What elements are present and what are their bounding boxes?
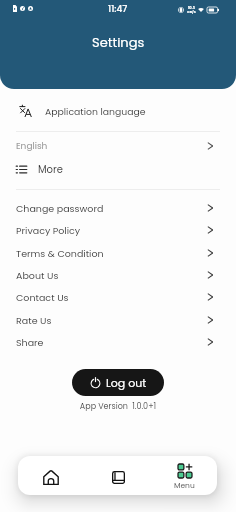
staticText: More [38,162,63,176]
button[interactable]: Books [85,456,151,495]
button[interactable]: Change password [0,197,236,219]
staticText: Rate Us [16,314,52,327]
button[interactable]: Home [18,456,84,495]
staticText: Contact Us [16,291,69,304]
staticText: About Us [16,269,59,282]
button[interactable]: Rate Us [0,309,236,331]
button[interactable]: Terms & Condition [0,242,236,264]
staticText: Menu [174,480,195,490]
button[interactable]: Menu [151,456,217,495]
staticText: Log out [106,375,147,390]
staticText: Settings [92,33,145,51]
staticText: 10.5 KB/s [187,5,196,14]
staticText: Share [16,336,44,349]
button[interactable]: English [0,137,236,155]
staticText: English [16,140,48,153]
staticText: Terms & Condition [16,247,104,260]
button[interactable]: About Us [0,264,236,286]
button[interactable]: Contact Us [0,286,236,308]
staticText: 11:47 [108,3,128,16]
staticText: Privacy Policy [16,224,81,237]
button[interactable]: Privacy Policy [0,219,236,241]
staticText: App Version 1.0.0+1 [0,401,236,412]
button[interactable]: Log out [72,369,164,396]
staticText: Change password [16,202,104,215]
staticText: Application language [45,105,146,118]
button[interactable]: Share [0,331,236,353]
button[interactable]: More [0,159,236,179]
button[interactable]: Application language [0,98,236,124]
